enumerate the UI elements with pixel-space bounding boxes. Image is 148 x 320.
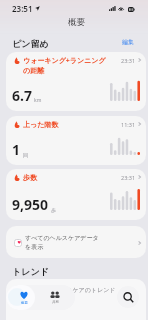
staticText: 編集 [122,38,134,46]
staticText: 23:31 [121,174,136,181]
staticText: 23:51 [12,3,33,14]
staticText: 23:31 [121,57,136,64]
button[interactable]: 共有 [50,291,60,304]
staticText: 1 [12,140,21,159]
button[interactable]: 概要 [6,285,35,310]
staticText: 歩 [51,207,56,213]
staticText: 概要 [21,301,28,305]
button[interactable]: 上った階数 [6,116,146,165]
button[interactable]: ウォーキング+ランニング の距離 [6,52,146,111]
staticText: 共有 [52,300,59,304]
staticText: ヘルスケアのトレンド [54,286,116,294]
staticText: ピン留め [12,38,49,49]
button[interactable]: 検索 [117,286,139,308]
button[interactable]: すべてのヘルスケアデータ を表示 [6,226,146,258]
staticText: ウォーキング+ランニング の距離 [23,56,121,75]
staticText: 11:31 [121,121,136,128]
staticText: トレンド [12,266,49,277]
staticText: すべてのヘルスケアデータ を表示 [25,234,138,251]
staticText: 回 [23,152,28,158]
button[interactable]: 歩数 [6,169,146,220]
staticText: 上った階数 [23,120,121,129]
staticText: 6.7 [12,86,32,105]
staticText: 概要 [68,17,85,28]
staticText: km [34,97,42,104]
button[interactable]: 編集 [119,35,137,49]
staticText: 歩数 [23,173,121,182]
staticText: 9,950 [12,195,49,214]
